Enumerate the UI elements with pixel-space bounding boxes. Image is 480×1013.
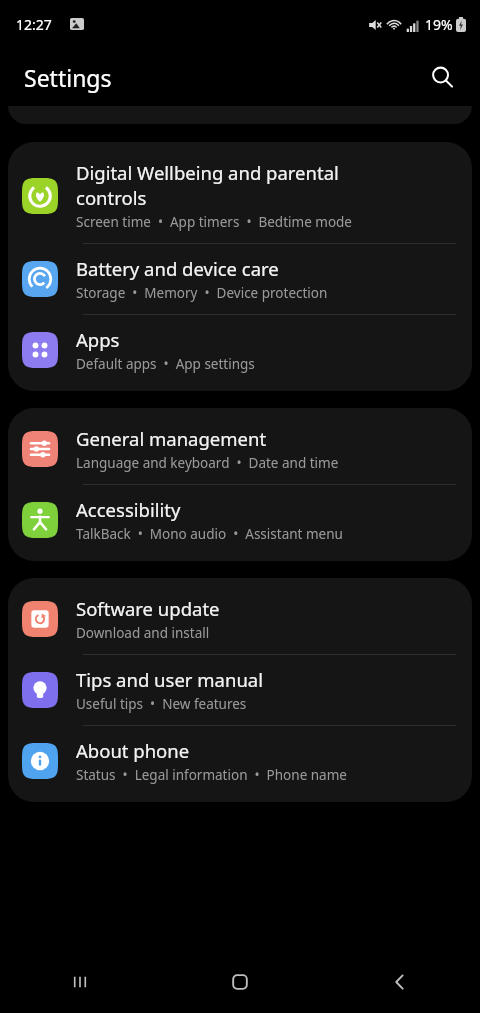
- staticText: Default apps • App settings: [76, 355, 255, 373]
- button[interactable]: Recent apps: [0, 951, 160, 1013]
- staticText: Useful tips • New features: [76, 695, 247, 713]
- staticText: Language and keyboard • Date and time: [76, 454, 339, 472]
- staticText: Software update: [76, 596, 220, 621]
- staticText: General management: [76, 426, 267, 451]
- staticText: Settings: [24, 62, 112, 93]
- button[interactable]: Software update: [8, 584, 472, 654]
- staticText: Battery and device care: [76, 256, 279, 281]
- button[interactable]: Digital Wellbeing and parental controls: [8, 148, 472, 243]
- staticText: Status • Legal information • Phone name: [76, 766, 347, 784]
- staticText: About phone: [76, 738, 190, 763]
- button[interactable]: Back: [320, 951, 480, 1013]
- staticText: TalkBack • Mono audio • Assistant menu: [76, 525, 343, 543]
- staticText: 19%: [425, 15, 453, 34]
- button[interactable]: Apps: [8, 315, 472, 385]
- staticText: Apps: [76, 327, 120, 352]
- staticText: Download and install: [76, 624, 210, 642]
- staticText: Screen time • App timers • Bedtime mode: [76, 213, 352, 231]
- button[interactable]: General management: [8, 414, 472, 484]
- button[interactable]: Battery and device care: [8, 244, 472, 314]
- button[interactable]: Tips and user manual: [8, 655, 472, 725]
- button[interactable]: Accessibility: [8, 485, 472, 555]
- button[interactable]: Home: [160, 951, 320, 1013]
- staticText: Storage • Memory • Device protection: [76, 284, 328, 302]
- staticText: Tips and user manual: [76, 667, 263, 692]
- staticText: Accessibility: [76, 497, 181, 522]
- button[interactable]: Search settings: [420, 55, 464, 99]
- staticText: 12:27: [16, 15, 52, 34]
- staticText: Digital Wellbeing and parental controls: [76, 160, 339, 210]
- button[interactable]: About phone: [8, 726, 472, 796]
